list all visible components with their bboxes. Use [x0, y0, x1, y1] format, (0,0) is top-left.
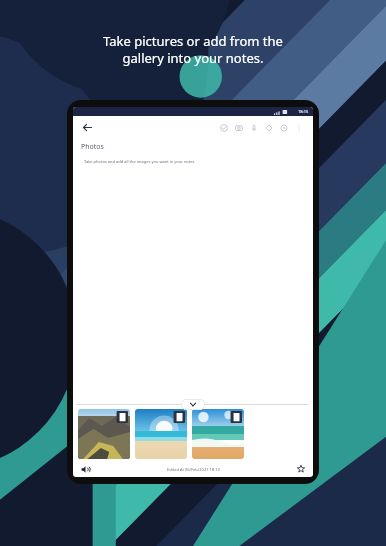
button[interactable]: Photo attachment: [78, 409, 130, 459]
button[interactable]: Photo attachment: [192, 409, 244, 459]
button[interactable]: Back: [80, 120, 94, 134]
button[interactable]: Camera: [231, 120, 246, 135]
staticText: Take pictures or add from the gallery in…: [103, 32, 283, 67]
button[interactable]: Tag: [261, 120, 276, 135]
staticText: Photos: [81, 142, 104, 152]
button[interactable]: Audio: [79, 463, 91, 475]
button[interactable]: Favorite: [295, 463, 307, 475]
staticText: 18:15: [298, 109, 309, 114]
staticText: Edited At 06/Feb/2021 18:13: [167, 467, 220, 472]
button[interactable]: Checklist: [216, 120, 231, 135]
staticText: Take photos and add all the images you w…: [84, 159, 195, 164]
button[interactable]: Voice: [246, 120, 261, 135]
button[interactable]: Reminder: [276, 120, 291, 135]
button[interactable]: More options: [291, 120, 306, 135]
button[interactable]: Collapse attachments: [181, 399, 205, 410]
button[interactable]: Photo attachment: [135, 409, 187, 459]
